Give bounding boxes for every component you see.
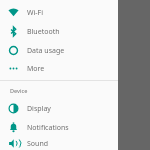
button[interactable]: More: [0, 60, 118, 77]
button[interactable]: Display: [0, 99, 118, 118]
staticText: More: [27, 64, 45, 74]
staticText: Bluetooth: [27, 27, 60, 37]
button[interactable]: Wi-Fi: [0, 3, 118, 22]
button[interactable]: Sound: [0, 137, 118, 150]
button[interactable]: Data usage: [0, 41, 118, 60]
staticText: Display: [27, 104, 51, 114]
button[interactable]: Notifications: [0, 118, 118, 137]
staticText: Device: [10, 87, 28, 94]
staticText: Notifications: [27, 123, 69, 133]
staticText: Wi-Fi: [27, 8, 44, 18]
staticText: Sound: [27, 139, 49, 149]
button[interactable]: Bluetooth: [0, 22, 118, 41]
staticText: Data usage: [27, 46, 65, 56]
